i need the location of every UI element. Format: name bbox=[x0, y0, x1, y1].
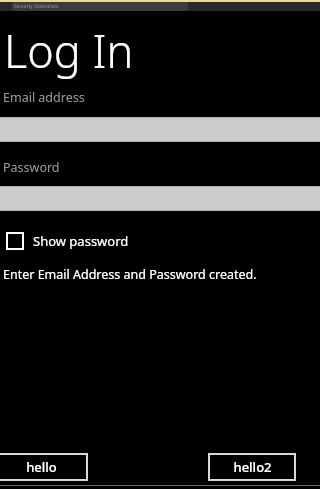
staticText: Password bbox=[3, 159, 60, 176]
button[interactable]: Show password bbox=[6, 232, 129, 250]
staticText: Show password bbox=[33, 232, 129, 250]
staticText: Security Specialists bbox=[14, 3, 59, 10]
staticText: hello bbox=[26, 458, 57, 476]
staticText: Email address bbox=[3, 89, 85, 106]
staticText: hello2 bbox=[233, 458, 272, 476]
staticText: Log In bbox=[4, 20, 134, 81]
staticText: Enter Email Address and Password created… bbox=[3, 266, 257, 283]
button[interactable]: hello bbox=[0, 453, 88, 481]
button[interactable]: hello2 bbox=[208, 453, 296, 481]
